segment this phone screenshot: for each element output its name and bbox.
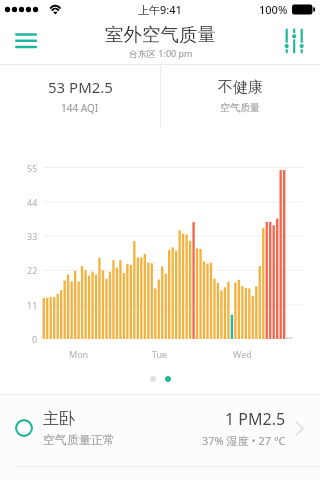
staticText: 37% 湿度 • 27 °C xyxy=(202,433,286,448)
staticText: 0 xyxy=(32,333,38,345)
staticText: 室外空气质量 xyxy=(105,23,216,46)
staticText: 55 xyxy=(27,162,38,174)
staticText: 100% xyxy=(259,2,288,17)
staticText: 上午9:41 xyxy=(138,2,182,17)
staticText: 44 xyxy=(27,196,38,208)
staticText: 台东区 1:00 pm xyxy=(129,47,193,59)
staticText: 不健康 xyxy=(218,78,263,97)
button[interactable]: Filter settings xyxy=(283,27,305,56)
staticText: 空气质量 xyxy=(220,101,260,114)
button[interactable]: Menu xyxy=(9,25,43,57)
staticText: 11 xyxy=(27,299,38,311)
staticText: 22 xyxy=(27,264,38,276)
staticText: 53 PM2.5 xyxy=(48,77,113,97)
staticText: Mon xyxy=(69,348,89,360)
button[interactable]: 主卧 xyxy=(0,398,320,458)
staticText: 空气质量正常 xyxy=(43,432,115,447)
staticText: Wed xyxy=(233,348,252,360)
staticText: 33 xyxy=(27,230,38,242)
staticText: 144 AQI xyxy=(61,101,99,115)
staticText: 1 PM2.5 xyxy=(225,408,286,430)
staticText: 主卧 xyxy=(43,409,75,429)
staticText: Tue xyxy=(152,348,168,360)
